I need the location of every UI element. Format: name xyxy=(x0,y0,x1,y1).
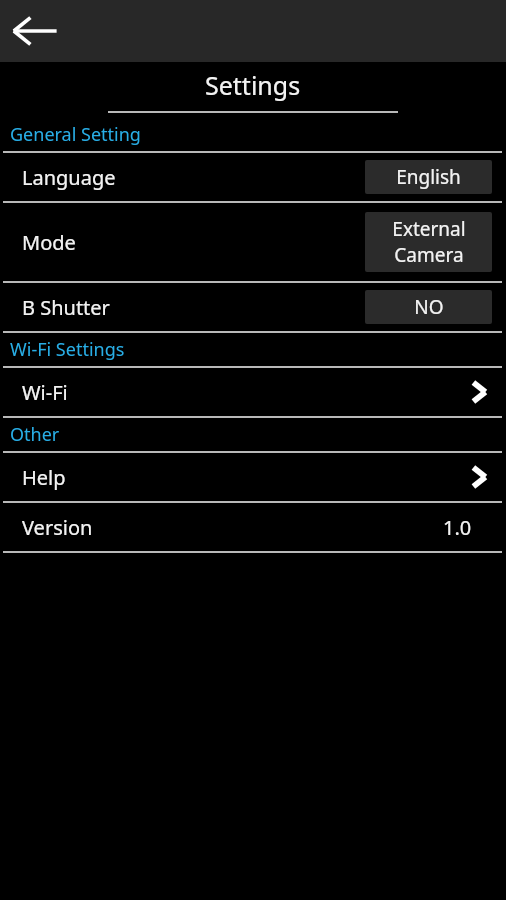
staticText: External xyxy=(392,216,466,242)
staticText: English xyxy=(396,164,461,190)
button[interactable]: NO xyxy=(365,290,492,324)
button[interactable]: Mode xyxy=(0,203,506,281)
staticText: Version xyxy=(22,514,93,541)
staticText: Help xyxy=(22,464,66,491)
other: Open Help xyxy=(462,460,492,494)
staticText: Wi-Fi Settings xyxy=(10,337,125,362)
button[interactable]: B Shutter xyxy=(0,283,506,331)
staticText: Wi-Fi xyxy=(22,379,68,406)
button[interactable]: External xyxy=(365,212,492,272)
staticText: Camera xyxy=(394,242,464,268)
staticText: Language xyxy=(22,164,116,191)
button[interactable]: Language xyxy=(0,153,506,201)
staticText: Mode xyxy=(22,229,76,256)
staticText: B Shutter xyxy=(22,294,110,321)
button[interactable]: Wi-Fi xyxy=(0,368,506,416)
staticText: 1.0 xyxy=(443,514,472,541)
staticText: Other xyxy=(10,422,60,447)
button[interactable]: Version xyxy=(0,503,506,551)
other: Open Wi-Fi settings xyxy=(462,375,492,409)
button[interactable]: Help xyxy=(0,453,506,501)
staticText: NO xyxy=(414,294,444,320)
staticText: General Setting xyxy=(10,122,141,147)
staticText: Settings xyxy=(205,68,301,102)
button[interactable]: English xyxy=(365,160,492,194)
button[interactable]: Back xyxy=(6,0,64,62)
